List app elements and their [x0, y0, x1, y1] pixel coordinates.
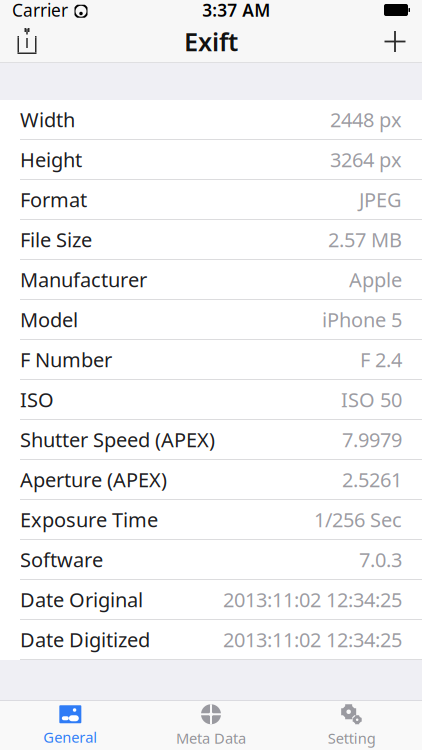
button[interactable]: F Number: [0, 340, 422, 380]
button[interactable]: Date Original: [0, 580, 422, 620]
staticText: F Number: [20, 346, 112, 373]
staticText: Exposure Time: [20, 506, 158, 533]
button[interactable]: Width: [0, 100, 422, 140]
button[interactable]: General: [0, 701, 141, 750]
staticText: 7.9979: [342, 426, 402, 453]
staticText: F 2.4: [360, 346, 402, 373]
staticText: 2013:11:02 12:34:25: [223, 586, 402, 613]
button[interactable]: Exposure Time: [0, 500, 422, 540]
staticText: 3:37 AM: [202, 0, 270, 21]
staticText: Date Original: [20, 586, 143, 613]
staticText: Setting: [328, 728, 376, 748]
button[interactable]: Manufacturer: [0, 260, 422, 300]
staticText: Date Digitized: [20, 626, 150, 653]
staticText: 3264 px: [330, 146, 402, 173]
staticText: 2448 px: [330, 106, 402, 133]
staticText: Meta Data: [176, 728, 246, 748]
staticText: Width: [20, 106, 75, 133]
button[interactable]: Model: [0, 300, 422, 340]
staticText: Exift: [184, 25, 238, 58]
button[interactable]: Add: [368, 20, 422, 63]
staticText: iPhone 5: [322, 306, 402, 333]
staticText: Carrier: [12, 0, 68, 21]
button[interactable]: Height: [0, 140, 422, 180]
staticText: Manufacturer: [20, 266, 147, 293]
staticText: 1/256 Sec: [314, 506, 402, 533]
staticText: Aperture (APEX): [20, 466, 167, 493]
staticText: 2.57 MB: [328, 226, 402, 253]
button[interactable]: Format: [0, 180, 422, 220]
button[interactable]: Aperture (APEX): [0, 460, 422, 500]
button[interactable]: Date Digitized: [0, 620, 422, 660]
staticText: File Size: [20, 226, 92, 253]
button[interactable]: File Size: [0, 220, 422, 260]
staticText: Model: [20, 306, 78, 333]
staticText: Shutter Speed (APEX): [20, 426, 215, 453]
staticText: General: [43, 727, 97, 747]
button[interactable]: ISO: [0, 380, 422, 420]
staticText: Software: [20, 546, 103, 573]
button[interactable]: Setting: [281, 701, 422, 750]
button[interactable]: Share: [0, 20, 54, 63]
staticText: 7.0.3: [359, 546, 402, 573]
button[interactable]: Meta Data: [141, 701, 281, 750]
staticText: Height: [20, 146, 82, 173]
button[interactable]: Software: [0, 540, 422, 580]
staticText: 2013:11:02 12:34:25: [223, 626, 402, 653]
staticText: Apple: [349, 266, 402, 293]
staticText: ISO: [20, 386, 54, 413]
staticText: 2.5261: [342, 466, 402, 493]
staticText: Format: [20, 186, 87, 213]
staticText: JPEG: [359, 186, 402, 213]
staticText: ISO 50: [341, 386, 402, 413]
button[interactable]: Shutter Speed (APEX): [0, 420, 422, 460]
